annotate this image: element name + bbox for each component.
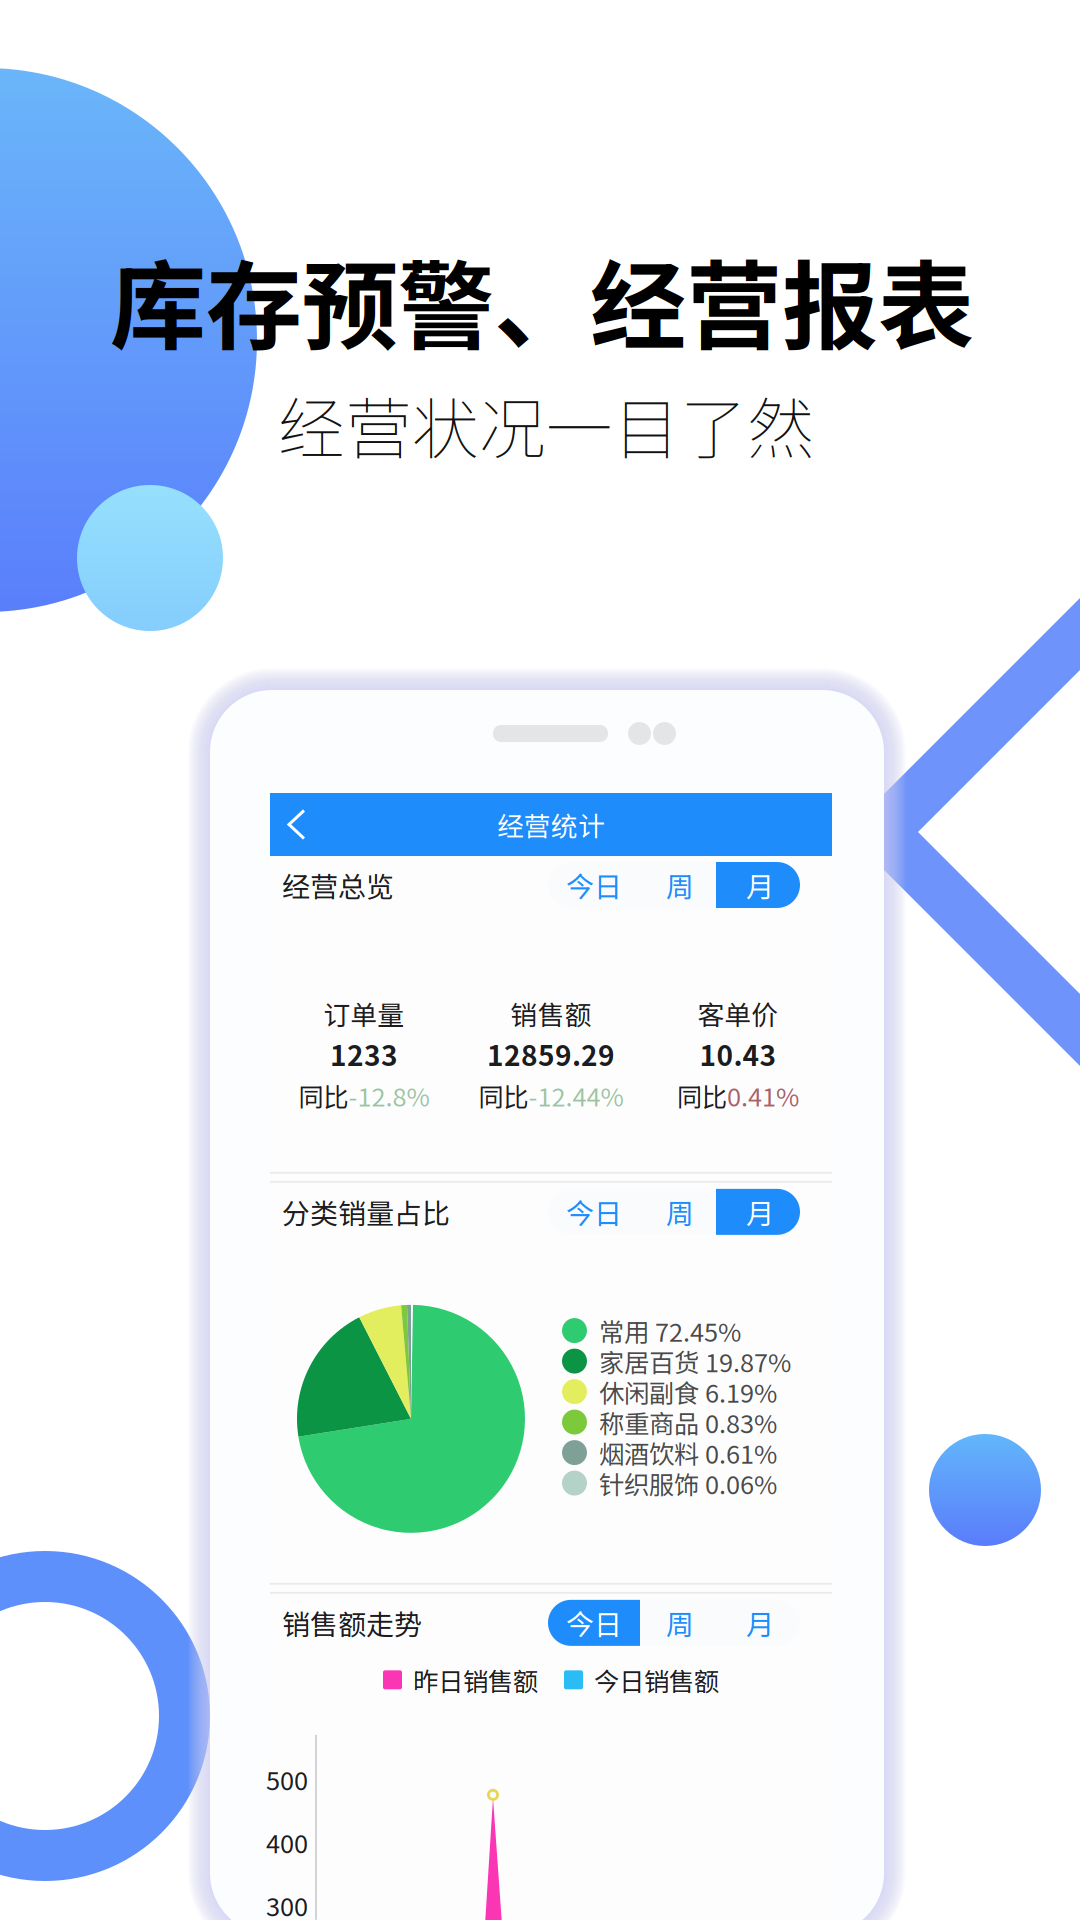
staticText: 今日 [566,865,622,905]
staticText: 销售额走势 [282,1603,422,1643]
staticText: 10.43 [699,1034,776,1074]
button[interactable]: Back [274,799,324,849]
staticText: 销售额 [510,994,591,1033]
button[interactable]: 今日 [548,862,640,908]
staticText: 周 [666,1192,694,1232]
staticText: 今日销售额 [594,1661,719,1698]
staticText: 1233 [330,1034,398,1074]
staticText: 周 [666,1603,694,1643]
staticText: 周 [666,865,694,905]
staticText: 称重商品 0.83% [599,1404,777,1440]
staticText: 经营状况一目了然 [278,376,814,472]
staticText: 12859.29 [487,1034,615,1074]
staticText: 订单量 [323,994,404,1033]
staticText: 家居百货 19.87% [599,1343,791,1379]
staticText: 常用 72.45% [599,1312,741,1349]
staticText: 昨日销售额 [413,1661,538,1698]
staticText: 同比 [677,1077,727,1114]
staticText: 经营总览 [282,865,394,905]
staticText: 月 [746,1192,774,1232]
staticText: 400 [266,1824,308,1860]
staticText: 经营统计 [497,805,605,844]
staticText: -12.8% [348,1077,429,1114]
staticText: 月 [746,1603,774,1643]
staticText: 同比 [298,1077,348,1114]
staticText: 烟酒饮料 0.61% [599,1434,777,1471]
staticText: 今日 [566,1192,622,1232]
button[interactable]: 周 [640,1600,720,1646]
staticText: 同比 [478,1077,528,1114]
button[interactable]: 周 [640,1189,720,1235]
staticText: 库存预警、经营报表 [110,230,974,369]
button[interactable]: 今日 [548,1189,640,1235]
button[interactable]: 月 [720,862,800,908]
staticText: 今日 [566,1603,622,1643]
staticText: 休闲副食 6.19% [599,1373,777,1410]
staticText: 月 [746,865,774,905]
staticText: 针织服饰 0.06% [599,1465,777,1501]
staticText: -12.44% [528,1077,623,1114]
staticText: 0.41% [727,1077,799,1114]
staticText: 500 [266,1761,308,1797]
button[interactable]: 月 [720,1189,800,1235]
button[interactable]: 月 [720,1600,800,1646]
button[interactable]: 周 [640,862,720,908]
staticText: 分类销量占比 [282,1192,450,1232]
staticText: 300 [266,1887,308,1920]
staticText: 客单价 [697,994,778,1033]
button[interactable]: 今日 [548,1600,640,1646]
